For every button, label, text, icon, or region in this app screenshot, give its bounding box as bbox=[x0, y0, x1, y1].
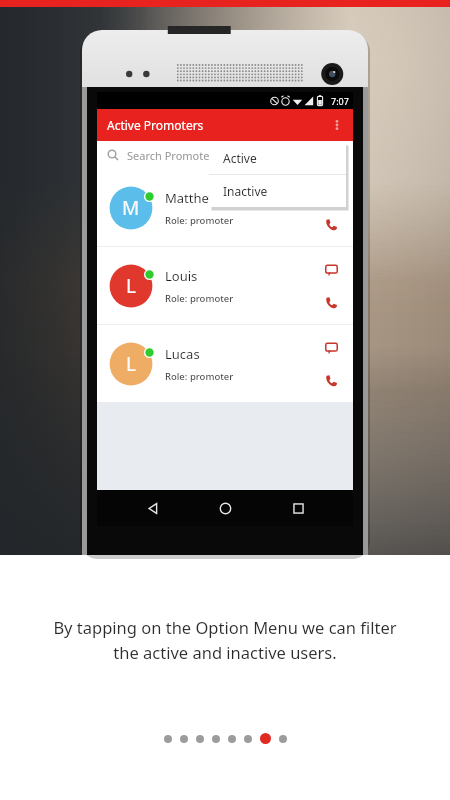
button[interactable]: Back bbox=[136, 491, 170, 525]
staticText: Role: promoter bbox=[165, 292, 234, 305]
button[interactable]: Message Louis bbox=[320, 259, 342, 281]
staticText: 7:07 bbox=[331, 95, 349, 107]
button[interactable]: Active bbox=[209, 142, 346, 174]
button[interactable]: Message Lucas bbox=[320, 337, 342, 359]
other: Search bbox=[107, 149, 119, 161]
button[interactable]: Page 3 bbox=[196, 735, 204, 743]
button[interactable]: M bbox=[97, 169, 353, 246]
staticText: Matthew bbox=[165, 189, 219, 207]
button[interactable]: L bbox=[97, 325, 353, 402]
staticText: Active bbox=[223, 150, 257, 166]
button[interactable]: Page 2 bbox=[180, 735, 188, 743]
button[interactable]: Page 5 bbox=[228, 735, 236, 743]
button[interactable]: Home bbox=[208, 491, 242, 525]
button[interactable]: Page 4 bbox=[212, 735, 220, 743]
button[interactable]: Inactive bbox=[209, 175, 346, 207]
staticText: Role: promoter bbox=[165, 214, 234, 227]
button[interactable]: Recents bbox=[281, 491, 315, 525]
staticText: Louis bbox=[165, 267, 198, 285]
staticText: Search Promoters bbox=[127, 148, 220, 163]
button[interactable]: Page 1 bbox=[164, 735, 172, 743]
staticText: L bbox=[126, 351, 136, 377]
staticText: L bbox=[126, 273, 136, 299]
staticText: Role: promoter bbox=[165, 370, 234, 383]
staticText: Lucas bbox=[165, 345, 200, 363]
button[interactable]: L bbox=[97, 247, 353, 324]
button[interactable]: Call Matthew bbox=[320, 213, 342, 235]
staticText: Inactive bbox=[223, 183, 268, 199]
button[interactable]: Active Promoters bbox=[97, 109, 353, 141]
staticText: M bbox=[122, 195, 140, 221]
staticText: By tapping on the Option Menu we can fil… bbox=[53, 616, 397, 664]
button[interactable]: Page 8 bbox=[279, 735, 287, 743]
button[interactable]: Call Lucas bbox=[320, 369, 342, 391]
button[interactable]: Call Louis bbox=[320, 291, 342, 313]
button[interactable]: Search bbox=[97, 141, 353, 169]
button[interactable]: Page 6 bbox=[244, 735, 252, 743]
staticText: Active Promoters bbox=[107, 117, 204, 133]
button[interactable]: More options bbox=[325, 113, 349, 137]
button[interactable]: Page 7 bbox=[260, 733, 271, 744]
